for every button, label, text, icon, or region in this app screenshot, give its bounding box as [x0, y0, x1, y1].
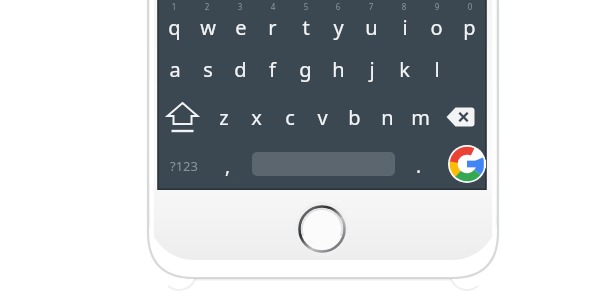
button[interactable]: ?123: [158, 146, 210, 186]
button[interactable]: Shift: [158, 98, 207, 136]
staticText: k: [399, 56, 410, 83]
staticText: .: [416, 153, 422, 179]
staticText: j: [369, 56, 375, 83]
staticText: t: [302, 14, 310, 41]
button[interactable]: j: [355, 52, 388, 86]
button[interactable]: l: [420, 52, 453, 86]
button[interactable]: y: [322, 10, 355, 44]
staticText: 9: [425, 1, 449, 13]
staticText: d: [234, 56, 247, 83]
staticText: x: [251, 104, 262, 131]
button[interactable]: k: [388, 52, 421, 86]
staticText: 4: [261, 1, 285, 13]
staticText: y: [333, 14, 344, 41]
button[interactable]: z: [207, 98, 240, 136]
staticText: z: [219, 104, 229, 131]
button[interactable]: c: [273, 98, 306, 136]
staticText: h: [332, 56, 345, 83]
staticText: 5: [294, 1, 318, 13]
staticText: q: [168, 14, 181, 41]
button[interactable]: ,: [210, 146, 246, 186]
button[interactable]: i: [388, 10, 421, 44]
button[interactable]: d: [224, 52, 257, 86]
staticText: v: [317, 104, 328, 131]
button[interactable]: .: [402, 146, 436, 186]
staticText: b: [348, 104, 361, 131]
button[interactable]: n: [371, 98, 404, 136]
staticText: i: [402, 14, 408, 41]
button[interactable]: o: [420, 10, 453, 44]
staticText: 1: [162, 1, 186, 13]
button[interactable]: m: [404, 98, 437, 136]
staticText: 0: [458, 1, 482, 13]
button[interactable]: a: [158, 52, 191, 86]
staticText: 8: [392, 1, 416, 13]
button[interactable]: Backspace: [437, 98, 486, 136]
staticText: w: [200, 14, 216, 41]
button[interactable]: g: [289, 52, 322, 86]
button[interactable]: f: [256, 52, 289, 86]
button[interactable]: b: [338, 98, 371, 136]
button[interactable]: h: [322, 52, 355, 86]
staticText: 2: [195, 1, 219, 13]
staticText: 3: [228, 1, 252, 13]
staticText: 7: [359, 1, 383, 13]
staticText: e: [235, 14, 247, 41]
button[interactable]: v: [306, 98, 339, 136]
button[interactable]: q: [158, 10, 191, 44]
staticText: s: [203, 56, 213, 83]
staticText: r: [268, 14, 277, 41]
staticText: o: [430, 14, 443, 41]
button[interactable]: w: [191, 10, 224, 44]
staticText: 6: [326, 1, 350, 13]
staticText: f: [269, 56, 276, 83]
staticText: g: [299, 56, 312, 83]
staticText: m: [411, 104, 430, 131]
button[interactable]: e: [224, 10, 257, 44]
button[interactable]: s: [191, 52, 224, 86]
button[interactable]: x: [240, 98, 273, 136]
staticText: p: [463, 14, 476, 41]
staticText: l: [434, 56, 440, 83]
staticText: n: [381, 104, 394, 131]
staticText: ,: [225, 153, 231, 179]
button[interactable]: t: [289, 10, 322, 44]
staticText: c: [285, 104, 295, 131]
button[interactable]: r: [256, 10, 289, 44]
staticText: ?123: [170, 157, 198, 175]
staticText: a: [169, 56, 181, 83]
button[interactable]: Google search: [447, 144, 487, 184]
button[interactable]: p: [453, 10, 486, 44]
button[interactable]: u: [355, 10, 388, 44]
staticText: u: [365, 14, 378, 41]
